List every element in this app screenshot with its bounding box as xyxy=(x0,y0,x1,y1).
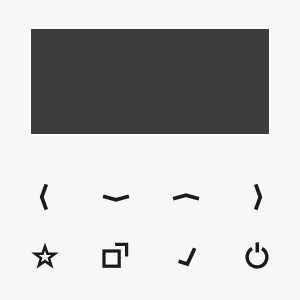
button[interactable]: Up xyxy=(158,169,214,225)
button[interactable]: Left xyxy=(16,169,72,225)
button[interactable]: Down xyxy=(88,170,144,226)
button[interactable]: Power xyxy=(229,228,285,284)
button[interactable]: Confirm xyxy=(159,229,215,285)
button[interactable]: Favorite xyxy=(17,229,73,285)
button[interactable]: Windows xyxy=(87,228,143,284)
button[interactable]: Right xyxy=(230,169,286,225)
button[interactable]: Display xyxy=(29,27,271,136)
